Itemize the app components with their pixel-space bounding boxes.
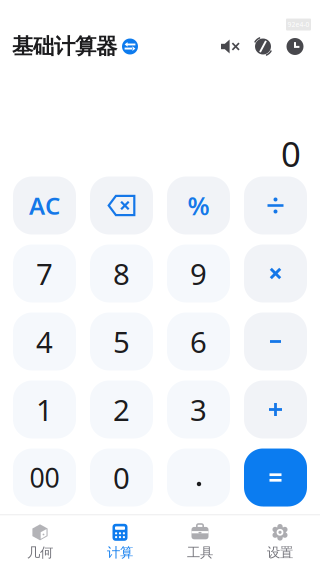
button[interactable]: 等于 [244,448,307,506]
button[interactable]: 9 [167,244,230,302]
button[interactable]: 0 [90,448,153,506]
staticText: 计算 [107,544,133,561]
staticText: 8 [113,254,130,293]
button[interactable]: AC [13,176,76,234]
button[interactable]: 8 [90,244,153,302]
button[interactable]: 除 [244,176,307,234]
staticText: 3 [190,390,207,429]
button[interactable]: 7 [13,244,76,302]
button[interactable]: 历史记录 [286,37,304,55]
staticText: 9 [190,254,207,293]
button[interactable]: 小数点 [167,448,230,506]
staticText: 2 [113,390,130,429]
button[interactable]: 设置 [240,517,320,567]
button[interactable]: 5 [90,312,153,370]
button[interactable]: 3 [167,380,230,438]
staticText: 1 [36,390,53,429]
button[interactable]: 2 [90,380,153,438]
button[interactable]: 静音 [220,38,240,54]
button[interactable]: 00 [13,448,76,506]
staticText: 6 [190,322,207,361]
button[interactable]: % [167,176,230,234]
staticText: AC [29,190,60,221]
staticText: 5 [113,322,130,361]
staticText: 基础计算器 [12,33,117,60]
staticText: % [187,189,209,222]
staticText: 92e4-0 [287,20,309,29]
staticText: 几何 [27,544,53,561]
button[interactable]: 基础计算器 [12,33,138,60]
staticText: 设置 [267,544,293,561]
staticText: 4 [36,322,53,361]
button[interactable]: 1 [13,380,76,438]
staticText: 工具 [187,544,213,561]
staticText: 0 [113,458,130,497]
button[interactable]: 删除 [90,176,153,234]
button[interactable]: 4 [13,312,76,370]
button[interactable]: 乘 [244,244,307,302]
button[interactable]: 6 [167,312,230,370]
staticText: 7 [36,254,53,293]
button[interactable]: 减 [244,312,307,370]
button[interactable]: 计算 [80,517,160,567]
button[interactable]: 几何 [0,517,80,567]
button[interactable]: 工具 [160,517,240,567]
staticText: 0 [281,130,301,176]
staticText: 00 [29,460,59,495]
button[interactable]: 加 [244,380,307,438]
button[interactable]: 主题 [253,36,273,56]
